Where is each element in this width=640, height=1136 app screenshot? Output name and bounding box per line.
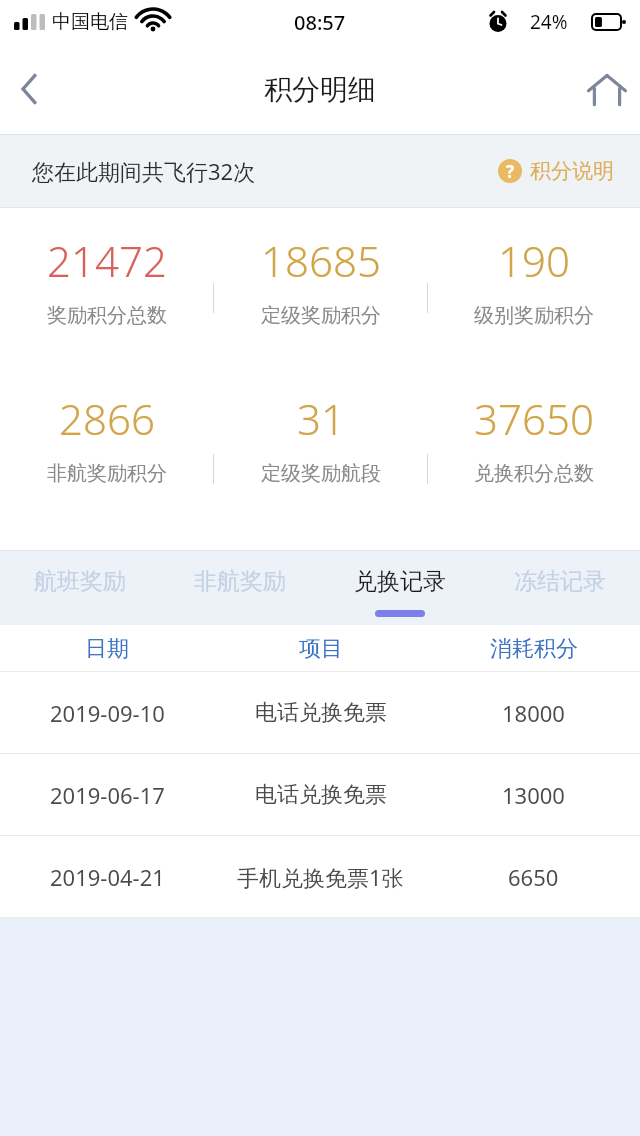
staticText: 37650: [474, 390, 594, 447]
staticText: 积分说明: [530, 158, 614, 184]
staticText: 13000: [502, 780, 565, 810]
staticText: 定级奖励积分: [261, 303, 381, 328]
button[interactable]: 非航奖励: [160, 550, 320, 625]
button[interactable]: 兑换记录: [320, 550, 480, 625]
staticText: 积分明细: [264, 72, 376, 107]
staticText: 级别奖励积分: [474, 303, 594, 328]
staticText: 中国电信: [52, 10, 128, 34]
staticText: 您在此期间共飞行32次: [32, 156, 256, 186]
staticText: 电话兑换免票: [255, 699, 387, 727]
staticText: 2866: [59, 390, 155, 447]
button[interactable]: Back: [0, 59, 58, 119]
staticText: 2019-04-21: [50, 862, 165, 892]
staticText: 奖励积分总数: [47, 303, 167, 328]
button[interactable]: 2019-06-17: [0, 754, 640, 836]
staticText: 手机兑换免票1张: [237, 862, 404, 892]
staticText: 电话兑换免票: [255, 781, 387, 809]
staticText: 冻结记录: [514, 567, 606, 596]
staticText: 非航奖励积分: [47, 461, 167, 486]
staticText: 日期: [85, 635, 129, 663]
staticText: 2019-06-17: [50, 780, 165, 810]
staticText: 2019-09-10: [50, 698, 165, 728]
staticText: 18000: [502, 698, 565, 728]
staticText: 兑换积分总数: [474, 461, 594, 486]
button[interactable]: 2019-09-10: [0, 672, 640, 754]
staticText: 6650: [508, 862, 559, 892]
button[interactable]: Home: [574, 57, 640, 121]
button[interactable]: ?: [498, 158, 614, 184]
staticText: 21472: [47, 232, 167, 289]
staticText: 08:57: [294, 9, 346, 36]
staticText: 24%: [530, 9, 568, 35]
staticText: 190: [498, 232, 570, 289]
staticText: 非航奖励: [194, 567, 286, 596]
staticText: 31: [297, 390, 345, 447]
button[interactable]: 2019-04-21: [0, 836, 640, 918]
staticText: 航班奖励: [34, 567, 126, 596]
staticText: 项目: [299, 635, 343, 663]
staticText: 18685: [261, 232, 381, 289]
button[interactable]: 航班奖励: [0, 550, 160, 625]
staticText: 兑换记录: [354, 567, 446, 596]
staticText: 消耗积分: [490, 635, 578, 663]
button[interactable]: 冻结记录: [480, 550, 640, 625]
staticText: ?: [506, 160, 515, 183]
staticText: 定级奖励航段: [261, 461, 381, 486]
